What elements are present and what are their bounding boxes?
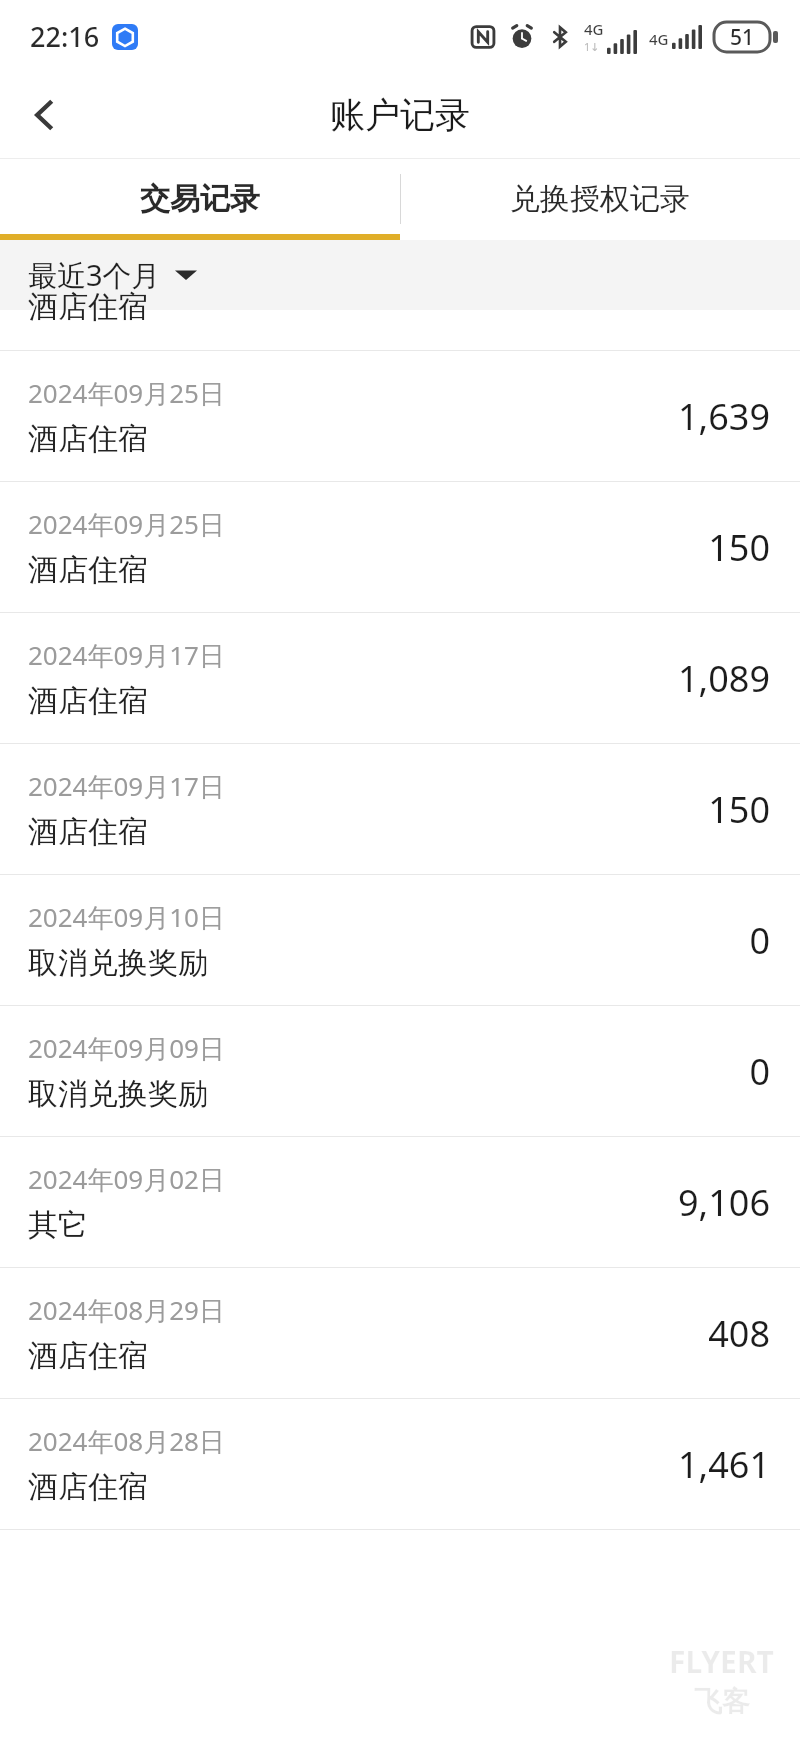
button[interactable]: 2024年09月17日 xyxy=(0,744,800,874)
staticText: 2024年09月10日 xyxy=(28,899,225,935)
button[interactable]: 交易记录 xyxy=(0,158,400,240)
button[interactable]: 最近3个月 xyxy=(28,255,197,295)
button[interactable]: 2024年09月10日 xyxy=(0,875,800,1005)
staticText: 2024年08月29日 xyxy=(28,1292,225,1328)
staticText: 1,639 xyxy=(677,392,770,441)
button[interactable]: 2024年09月25日 xyxy=(0,351,800,481)
staticText: 交易记录 xyxy=(140,180,260,218)
staticText: 2024年09月17日 xyxy=(28,637,225,673)
staticText: 22:16 xyxy=(30,18,100,55)
button[interactable]: 2024年08月29日 xyxy=(0,1268,800,1398)
button[interactable]: 2024年09月09日 xyxy=(0,1006,800,1136)
staticText: 2024年09月02日 xyxy=(28,1161,225,1197)
staticText: 1↓ xyxy=(584,39,600,54)
staticText: 酒店住宿 xyxy=(28,420,148,458)
staticText: 51 xyxy=(730,23,755,52)
staticText: 2024年09月25日 xyxy=(28,506,225,542)
staticText: 取消兑换奖励 xyxy=(28,1075,208,1113)
staticText: 酒店住宿 xyxy=(28,1468,148,1506)
staticText: 9,106 xyxy=(677,1178,770,1227)
staticText: 酒店住宿 xyxy=(28,1337,148,1375)
staticText: 酒店住宿 xyxy=(28,288,148,326)
staticText: 最近3个月 xyxy=(28,255,161,295)
staticText: 酒店住宿 xyxy=(28,813,148,851)
staticText: 账户记录 xyxy=(330,93,470,137)
staticText: 4G xyxy=(584,19,604,39)
staticText: 2024年09月09日 xyxy=(28,1030,225,1066)
staticText: 其它 xyxy=(28,1206,88,1244)
staticText: 飞客 xyxy=(694,1684,750,1719)
button[interactable]: 酒店住宿 xyxy=(0,310,800,350)
button[interactable]: 2024年09月17日 xyxy=(0,613,800,743)
staticText: 1,461 xyxy=(677,1440,770,1489)
staticText: 兑换授权记录 xyxy=(510,180,690,218)
staticText: 408 xyxy=(708,1309,770,1358)
staticText: 取消兑换奖励 xyxy=(28,944,208,982)
staticText: 150 xyxy=(708,785,770,834)
staticText: 酒店住宿 xyxy=(28,551,148,589)
staticText: FLYERT xyxy=(669,1641,774,1682)
staticText: 酒店住宿 xyxy=(28,682,148,720)
button[interactable]: 兑换授权记录 xyxy=(400,158,800,240)
staticText: 2024年09月25日 xyxy=(28,375,225,411)
button[interactable]: 2024年08月28日 xyxy=(0,1399,800,1529)
staticText: 4G xyxy=(649,29,669,49)
staticText: 1,089 xyxy=(677,654,770,703)
staticText: 2024年09月17日 xyxy=(28,768,225,804)
button[interactable]: 2024年09月25日 xyxy=(0,482,800,612)
staticText: 0 xyxy=(749,1047,770,1096)
staticText: 0 xyxy=(749,916,770,965)
button[interactable]: 返回 xyxy=(0,72,88,158)
staticText: 2024年08月28日 xyxy=(28,1423,225,1459)
button[interactable]: 2024年09月02日 xyxy=(0,1137,800,1267)
staticText: 150 xyxy=(708,523,770,572)
